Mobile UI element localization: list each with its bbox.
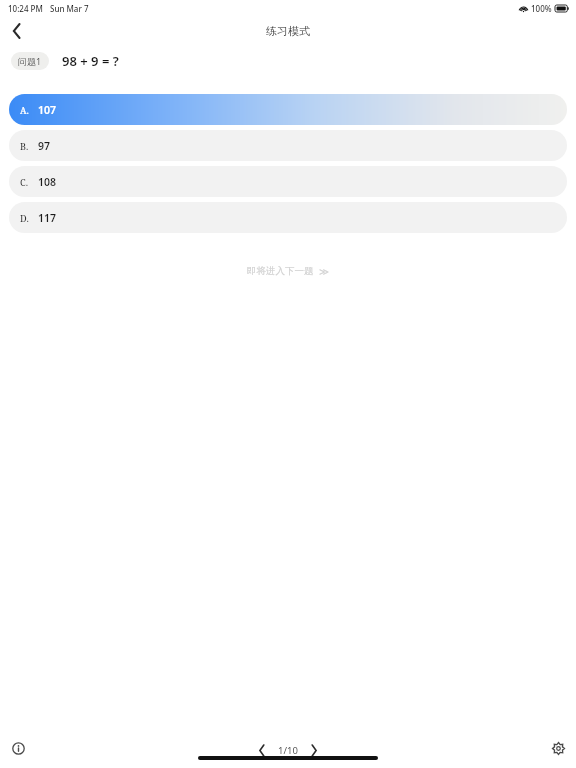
staticText: 98 + 9 = ? xyxy=(62,52,119,70)
staticText: 问题1 xyxy=(18,55,42,67)
staticText: A. xyxy=(20,104,29,116)
button[interactable]: A. xyxy=(9,94,567,125)
staticText: B. xyxy=(20,140,29,152)
staticText: 108 xyxy=(38,175,57,189)
staticText: ≫ xyxy=(319,266,329,277)
staticText: 107 xyxy=(38,103,57,117)
button[interactable]: C. xyxy=(9,166,567,197)
staticText: C. xyxy=(20,176,29,188)
staticText: 117 xyxy=(38,211,57,225)
staticText: 97 xyxy=(38,139,51,153)
staticText: 即将进入下一题 xyxy=(247,265,314,277)
button[interactable]: Next xyxy=(304,740,324,760)
staticText: Sun Mar 7 xyxy=(50,3,89,14)
button[interactable]: B. xyxy=(9,130,567,161)
button[interactable]: Previous xyxy=(252,740,272,760)
button[interactable]: Settings xyxy=(547,737,569,759)
button[interactable]: 即将进入下一题 xyxy=(239,261,337,281)
button[interactable]: Back xyxy=(0,16,34,46)
staticText: D. xyxy=(20,212,29,224)
staticText: 1/10 xyxy=(278,744,298,757)
button[interactable]: D. xyxy=(9,202,567,233)
staticText: 100% xyxy=(531,3,552,14)
staticText: 练习模式 xyxy=(266,24,310,38)
button[interactable]: Info xyxy=(7,737,29,759)
staticText: 10:24 PM xyxy=(8,3,43,14)
